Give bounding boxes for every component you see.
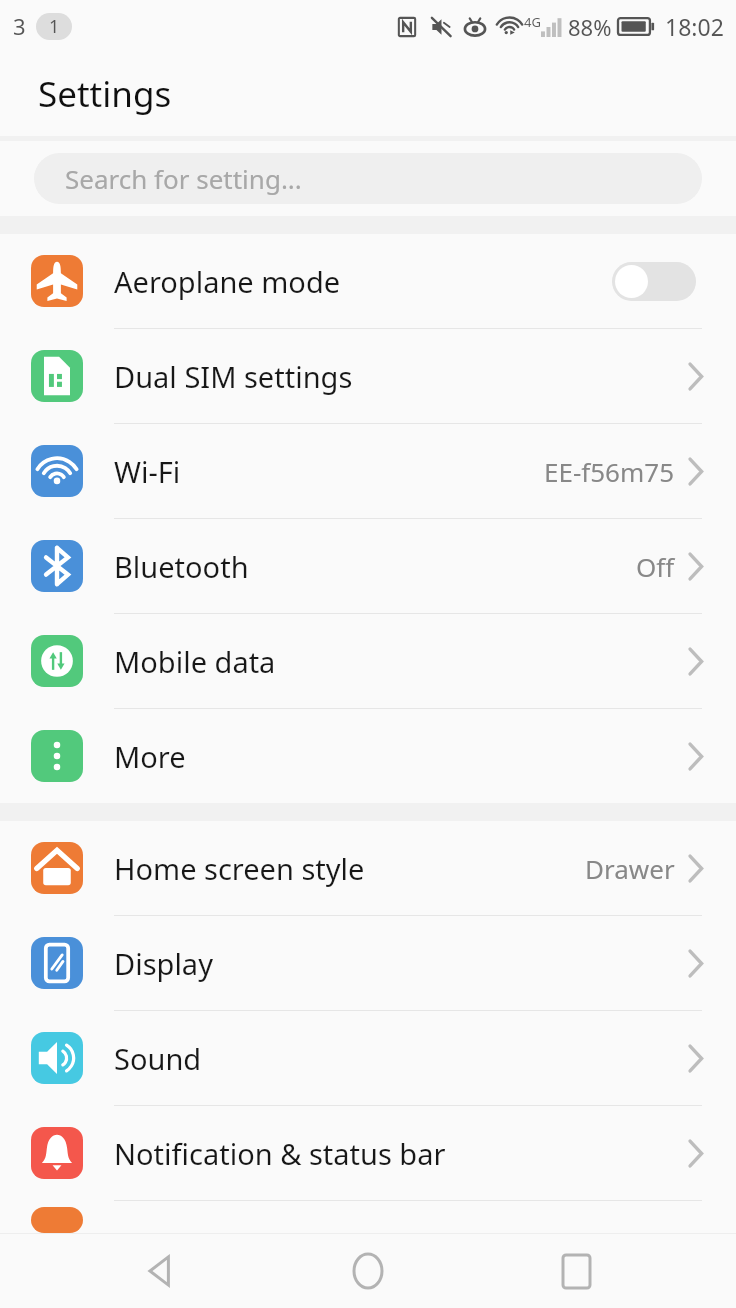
button[interactable]: Recent apps	[528, 1234, 624, 1308]
staticText: Aeroplane mode	[114, 262, 612, 301]
button[interactable]: Aeroplane mode, off	[612, 262, 696, 301]
button[interactable]: Wi-Fi	[0, 424, 736, 518]
staticText: More	[114, 737, 687, 776]
staticText: 3	[13, 11, 26, 41]
button[interactable]: Notification & status bar	[0, 1106, 736, 1200]
staticText: 88%	[568, 12, 612, 42]
staticText: Notification & status bar	[114, 1134, 687, 1173]
button[interactable]: More	[0, 709, 736, 803]
staticText: Settings	[38, 70, 172, 118]
staticText: Mobile data	[114, 642, 687, 681]
staticText: Off	[636, 549, 675, 584]
button[interactable]: Bluetooth	[0, 519, 736, 613]
button[interactable]: Search for setting...	[34, 153, 702, 204]
button[interactable]: Back	[112, 1234, 208, 1308]
staticText: Search for setting...	[65, 161, 302, 196]
button[interactable]: Aeroplane mode	[0, 234, 736, 328]
staticText: 4G	[524, 13, 541, 31]
staticText: Dual SIM settings	[114, 357, 687, 396]
button[interactable]: Mobile data	[0, 614, 736, 708]
staticText: 18:02	[665, 11, 724, 42]
button[interactable]: Dual SIM settings	[0, 329, 736, 423]
staticText: 1	[49, 14, 60, 39]
button[interactable]: Home screen style	[0, 821, 736, 915]
button[interactable]: Home	[320, 1234, 416, 1308]
staticText: Sound	[114, 1039, 687, 1078]
staticText: Bluetooth	[114, 547, 636, 586]
button[interactable]: Sound	[0, 1011, 736, 1105]
staticText: Display	[114, 944, 687, 983]
staticText: EE-f56m75	[544, 454, 675, 489]
staticText: Wi-Fi	[114, 452, 544, 491]
staticText: Drawer	[585, 851, 675, 886]
button[interactable]: Display	[0, 916, 736, 1010]
staticText: Home screen style	[114, 849, 585, 888]
